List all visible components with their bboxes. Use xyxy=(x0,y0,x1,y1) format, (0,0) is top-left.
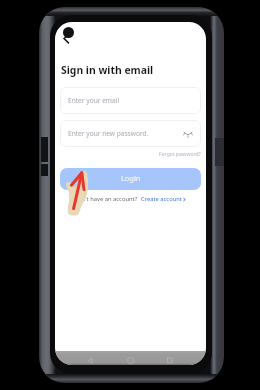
button[interactable]: Show password xyxy=(182,128,194,140)
button[interactable]: Enter your new password. xyxy=(60,120,201,147)
button[interactable]: Enter your email xyxy=(60,87,201,114)
button[interactable]: Back xyxy=(56,28,76,48)
staticText: Enter your new password. xyxy=(68,129,149,138)
staticText: Create account xyxy=(141,195,182,203)
button[interactable]: Create account xyxy=(141,195,187,203)
staticText: Sign in with email xyxy=(61,63,154,77)
staticText: Login xyxy=(121,173,141,183)
button[interactable]: Forgot password? xyxy=(141,149,201,159)
staticText: Don't have an account? xyxy=(74,195,138,203)
staticText: Enter your email xyxy=(68,96,120,105)
staticText: Forgot password? xyxy=(159,151,201,158)
button[interactable]: Login xyxy=(60,168,201,190)
